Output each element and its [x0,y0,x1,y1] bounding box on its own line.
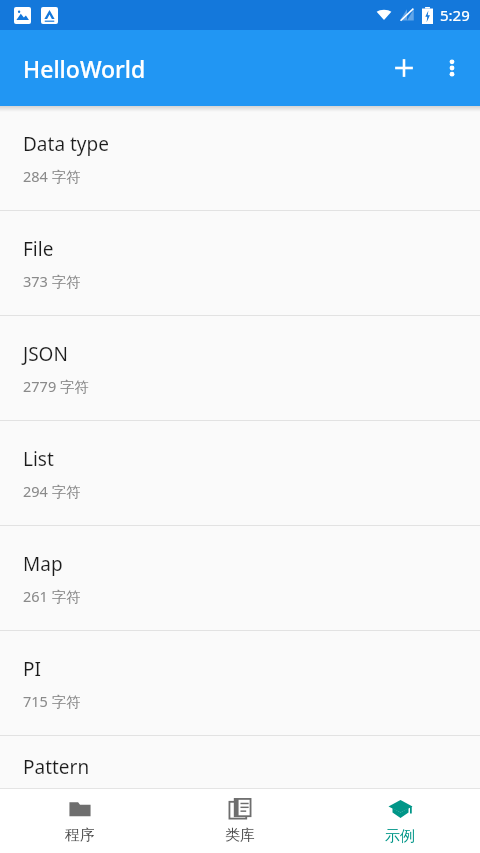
button[interactable]: 程序 [0,789,160,853]
staticText: 284 字符 [23,166,81,186]
staticText: Map [23,551,63,577]
staticText: 示例 [385,827,415,846]
staticText: 261 字符 [23,586,81,606]
staticText: 程序 [65,826,95,845]
button[interactable]: File [0,211,480,315]
button[interactable]: 示例 [320,789,480,853]
staticText: 373 字符 [23,271,81,291]
button[interactable]: Add [380,44,428,92]
button[interactable]: 类库 [160,789,320,853]
button[interactable]: List [0,421,480,525]
button[interactable]: More options [428,44,476,92]
button[interactable]: Map [0,526,480,630]
staticText: 5:29 [440,5,470,25]
staticText: File [23,236,54,262]
staticText: Pattern [23,754,90,780]
staticText: 2779 字符 [23,376,89,396]
staticText: 715 字符 [23,691,81,711]
button[interactable]: JSON [0,316,480,420]
staticText: 294 字符 [23,481,81,501]
staticText: HelloWorld [23,53,146,84]
staticText: JSON [23,341,68,367]
button[interactable]: Data type [0,106,480,210]
staticText: Data type [23,131,109,157]
button[interactable]: PI [0,631,480,735]
staticText: 类库 [225,826,255,845]
staticText: List [23,446,54,472]
staticText: PI [23,656,41,682]
